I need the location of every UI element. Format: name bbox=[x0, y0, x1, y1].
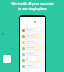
button[interactable] bbox=[3, 55, 11, 63]
button[interactable] bbox=[20, 39, 45, 45]
staticText: in one single place bbox=[18, 7, 47, 11]
staticText: Work with all your accounts bbox=[11, 2, 54, 6]
button[interactable] bbox=[20, 51, 45, 57]
button[interactable] bbox=[20, 45, 45, 51]
button[interactable] bbox=[20, 57, 45, 63]
button[interactable] bbox=[20, 27, 45, 33]
button[interactable] bbox=[20, 33, 45, 39]
button[interactable] bbox=[20, 63, 45, 69]
